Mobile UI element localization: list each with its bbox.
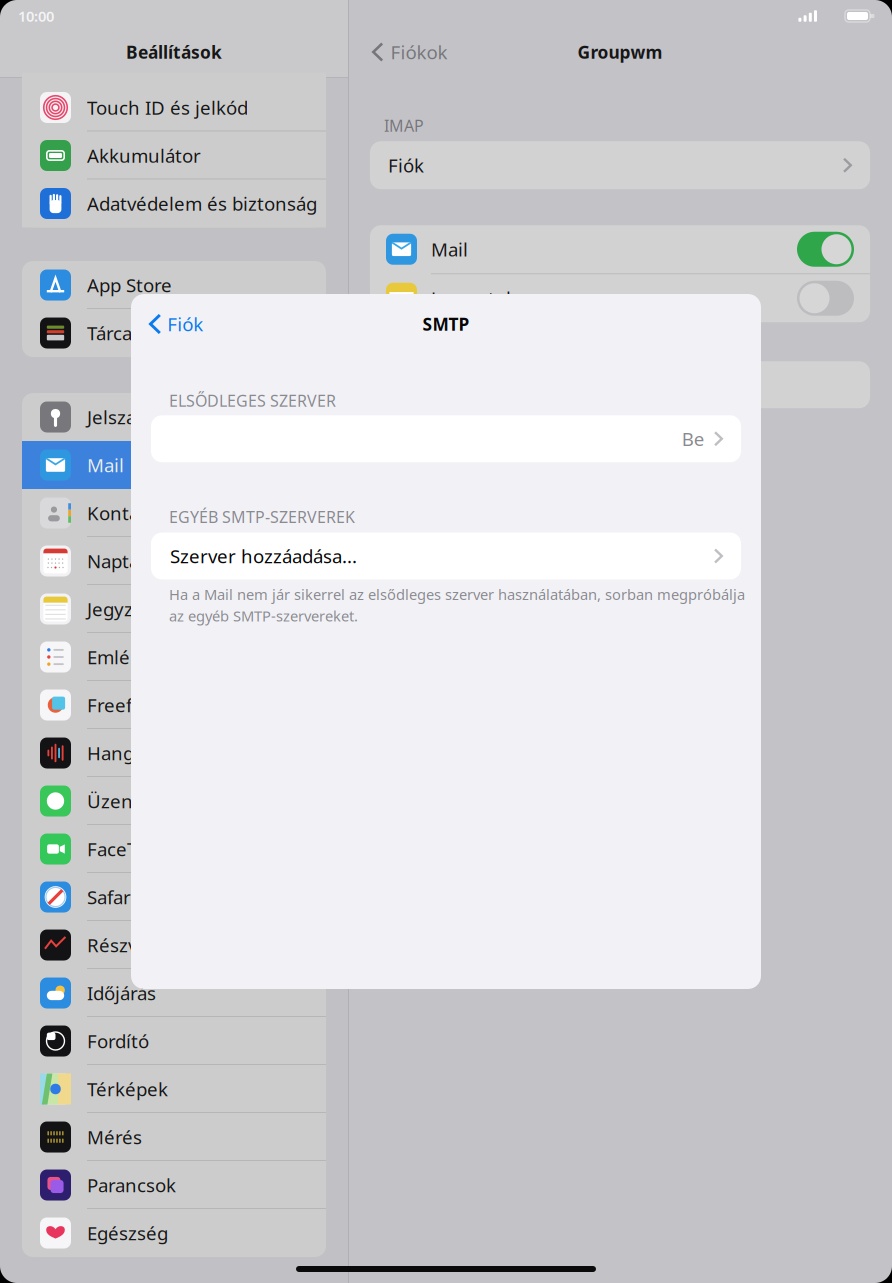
staticText: FaceTime — [87, 837, 170, 861]
button[interactable]: App Store — [22, 261, 326, 309]
staticText: ELSŐDLEGES SZERVER — [169, 390, 336, 411]
button[interactable]: Fordító — [22, 1017, 326, 1065]
staticText: Tárca — [87, 321, 132, 345]
staticText: az egyéb SMTP-szervereket. — [169, 606, 358, 625]
button[interactable]: Parancsok — [22, 1161, 326, 1209]
staticText: Mérés — [87, 1125, 142, 1149]
button[interactable]: Kontaktok — [22, 489, 326, 537]
staticText: Térképek — [87, 1077, 168, 1101]
staticText: Akkumulátor — [87, 143, 201, 168]
button[interactable]: Jelszavak — [22, 393, 326, 441]
staticText: Naptár — [87, 549, 147, 573]
staticText: Parancsok — [87, 1173, 176, 1197]
button[interactable]: Mérés — [22, 1113, 326, 1161]
staticText: Fiók — [167, 312, 203, 336]
staticText: Szerver hozzáadása... — [170, 544, 357, 568]
button[interactable]: Tárca — [22, 309, 326, 357]
staticText: Groupwm — [577, 40, 662, 63]
button[interactable]: Akkumulátor — [22, 131, 326, 179]
staticText: Emlékeztetők — [87, 645, 205, 669]
staticText: Fordító — [87, 1029, 149, 1053]
staticText: App Store — [87, 273, 172, 297]
button[interactable]: Be — [151, 415, 741, 462]
button[interactable]: Naptár — [22, 537, 326, 585]
staticText: IMAP — [384, 115, 424, 136]
staticText: Időjárás — [87, 981, 156, 1005]
button[interactable]: Szerver hozzáadása... — [151, 532, 741, 579]
staticText: Safari — [87, 885, 136, 909]
staticText: Jelszavak — [87, 405, 165, 429]
button[interactable]: Hangjegyzetek — [22, 729, 326, 777]
button[interactable]: Időjárás — [22, 969, 326, 1017]
staticText: Beállítások — [126, 40, 222, 63]
button[interactable]: Egészség — [22, 1209, 326, 1257]
button[interactable]: Térképek — [22, 1065, 326, 1113]
staticText: Hangjegyzetek — [87, 741, 219, 765]
staticText: EGYÉB SMTP-SZERVEREK — [169, 506, 355, 527]
staticText: Mail — [431, 237, 468, 262]
staticText: Egészség — [87, 1221, 168, 1245]
button[interactable]: Mail — [22, 441, 326, 489]
staticText: Jegyzetek — [431, 286, 516, 311]
button[interactable]: Üzenetek — [22, 777, 326, 825]
button[interactable]: Touch ID és jelkód — [22, 83, 326, 131]
staticText: 10:00 — [18, 6, 54, 26]
button[interactable]: Freeform — [22, 681, 326, 729]
button[interactable]: FaceTime — [22, 825, 326, 873]
staticText: Részvények — [87, 933, 191, 957]
staticText: Freeform — [87, 693, 168, 717]
staticText: Be — [682, 426, 705, 451]
staticText: Mail — [87, 453, 124, 477]
button[interactable]: Részvények — [22, 921, 326, 969]
button[interactable]: Safari — [22, 873, 326, 921]
staticText: Adatvédelem és biztonság — [87, 191, 317, 216]
staticText: Ha a Mail nem jár sikerrel az elsődleges… — [169, 584, 745, 604]
button[interactable]: Emlékeztetők — [22, 633, 326, 681]
staticText: Fiók — [388, 153, 424, 178]
staticText: Touch ID és jelkód — [87, 95, 248, 120]
staticText: Üzenetek — [87, 789, 172, 813]
staticText: Jegyzetek — [87, 597, 172, 621]
staticText: Kontaktok — [87, 501, 177, 525]
button[interactable]: Adatvédelem és biztonság — [22, 179, 326, 227]
button[interactable]: Jegyzetek — [22, 585, 326, 633]
staticText: Fiókok — [390, 40, 447, 64]
button[interactable]: Fiók — [131, 302, 211, 346]
staticText: SMTP — [422, 312, 469, 335]
